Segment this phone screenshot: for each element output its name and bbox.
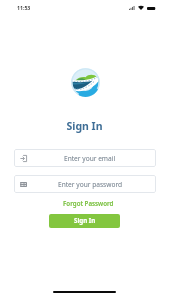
staticText: Sign In	[74, 216, 96, 224]
staticText: Forgot Password	[63, 199, 114, 207]
button[interactable]: Password	[14, 175, 156, 193]
staticText: 11:53	[17, 4, 31, 11]
button[interactable]: Sign In	[49, 214, 120, 228]
staticText: Enter your email	[64, 154, 116, 163]
staticText: Sign In	[0, 119, 169, 133]
other: Email	[20, 155, 27, 162]
other: Password	[20, 182, 27, 187]
staticText: Enter your password	[58, 180, 123, 189]
button[interactable]: Email	[14, 149, 156, 167]
button[interactable]: Forgot Password	[63, 199, 114, 207]
